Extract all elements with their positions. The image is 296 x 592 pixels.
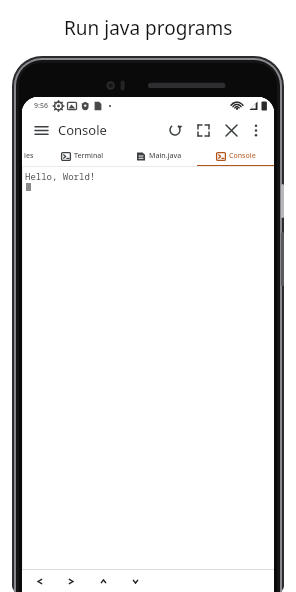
button[interactable]: Scroll up — [94, 572, 112, 590]
button[interactable]: Console — [58, 121, 107, 139]
staticText: Terminal — [74, 151, 104, 161]
staticText: Main.java — [149, 151, 182, 161]
staticText: 9:56 — [34, 101, 48, 111]
staticText: les — [24, 151, 34, 161]
button[interactable]: Main.java — [120, 145, 197, 167]
button[interactable]: Scroll down — [126, 572, 144, 590]
button[interactable]: More options — [246, 120, 266, 140]
staticText: Console — [229, 151, 256, 161]
button[interactable]: Console — [197, 145, 274, 167]
staticText: Hello, World! — [25, 170, 96, 182]
staticText: Run java programs — [64, 15, 233, 41]
button[interactable]: Previous — [30, 572, 48, 590]
button[interactable]: Close — [220, 119, 242, 141]
button[interactable]: Next — [62, 572, 80, 590]
button[interactable]: Open navigation menu — [31, 120, 51, 140]
button[interactable]: Terminal — [44, 145, 120, 167]
button[interactable]: Toggle fullscreen — [192, 119, 214, 141]
button[interactable]: les — [22, 145, 44, 167]
button[interactable]: Refresh — [164, 119, 186, 141]
